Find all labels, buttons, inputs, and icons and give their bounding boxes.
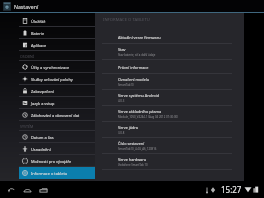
staticText: INFORMACE O TABLETU bbox=[103, 17, 150, 23]
staticText: 15:27 bbox=[221, 184, 242, 195]
button[interactable]: Aktuální verze firmwaru bbox=[95, 30, 244, 44]
button[interactable]: Recent apps bbox=[36, 183, 50, 197]
button[interactable]: Stav bbox=[95, 44, 244, 60]
staticText: Aplikace bbox=[31, 43, 47, 48]
staticText: Zálohování a obnovení dat bbox=[31, 113, 80, 118]
staticText: Verze jádra bbox=[118, 125, 138, 130]
staticText: Právní informace bbox=[118, 65, 149, 70]
button[interactable]: Možnosti pro vývojáře bbox=[19, 155, 95, 167]
staticText: Usnadnění bbox=[31, 147, 51, 152]
staticText: OSOBNÍ bbox=[20, 54, 34, 59]
staticText: Úložiště bbox=[31, 19, 46, 24]
button[interactable]: Verze hardwaru bbox=[95, 154, 244, 170]
button[interactable]: Aplikace bbox=[19, 39, 95, 51]
button[interactable]: Informace o tabletu bbox=[19, 167, 95, 179]
staticText: Aktuální verze firmwaru bbox=[118, 35, 161, 40]
button[interactable]: Zabezpečení bbox=[19, 85, 95, 97]
staticText: Datum a čas bbox=[31, 135, 54, 140]
button[interactable]: Právní informace bbox=[95, 60, 244, 74]
staticText: Nastavení bbox=[14, 3, 39, 10]
button[interactable]: Verze základního pásma bbox=[95, 106, 244, 122]
button[interactable]: Označení modelu bbox=[95, 74, 244, 90]
button[interactable]: Back bbox=[4, 183, 18, 197]
staticText: Účty a synchronizace bbox=[31, 65, 70, 70]
staticText: Zabezpečení bbox=[31, 89, 54, 94]
staticText: SmartTab10_4.4G_A6_120816 bbox=[118, 147, 157, 151]
staticText: Stav baterie, síť a další údaje bbox=[118, 53, 156, 57]
staticText: Vodafone SmartTab 10 bbox=[118, 163, 148, 167]
button[interactable]: Verze systému Android bbox=[95, 90, 244, 106]
staticText: Služby určování polohy bbox=[31, 77, 73, 82]
staticText: Možnosti pro vývojáře bbox=[31, 159, 72, 164]
staticText: Verze systému Android bbox=[118, 93, 160, 98]
button[interactable]: Zálohování a obnovení dat bbox=[19, 109, 95, 121]
button[interactable]: Datum a čas bbox=[19, 131, 95, 143]
staticText: Jazyk a vstup bbox=[31, 101, 55, 106]
button[interactable]: Baterie bbox=[19, 27, 95, 39]
button[interactable]: Služby určování polohy bbox=[19, 73, 95, 85]
button[interactable]: Číslo sestavení bbox=[95, 138, 244, 154]
staticText: Informace o tabletu bbox=[31, 171, 68, 176]
staticText: Module_1050_V4244-1 (Aug 04 2012 07:30:0… bbox=[118, 115, 178, 119]
staticText: Číslo sestavení bbox=[118, 141, 145, 146]
staticText: Baterie bbox=[31, 31, 45, 36]
button[interactable]: Home bbox=[20, 183, 34, 197]
staticText: SmartTab10 bbox=[118, 83, 134, 87]
staticText: Stav bbox=[118, 47, 126, 52]
staticText: Verze základního pásma bbox=[118, 109, 162, 114]
staticText: 4.0.3 bbox=[118, 99, 125, 103]
button[interactable]: Účty a synchronizace bbox=[19, 61, 95, 73]
staticText: Označení modelu bbox=[118, 77, 150, 82]
staticText: Verze hardwaru bbox=[118, 157, 147, 162]
button[interactable]: Usnadnění bbox=[19, 143, 95, 155]
button[interactable]: Jazyk a vstup bbox=[19, 97, 95, 109]
button[interactable]: Verze jádra bbox=[95, 122, 244, 138]
staticText: SYSTÉM bbox=[20, 124, 34, 129]
button[interactable]: Úložiště bbox=[19, 15, 95, 27]
staticText: 3.0.8 bbox=[118, 131, 125, 135]
